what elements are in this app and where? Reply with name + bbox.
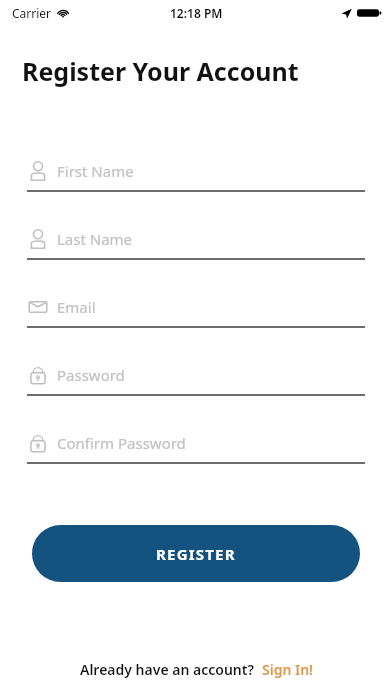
staticText: Carrier bbox=[12, 5, 52, 21]
staticText: Sign In! bbox=[262, 660, 313, 679]
button[interactable]: REGISTER bbox=[32, 525, 360, 582]
staticText: 12:18 PM bbox=[170, 5, 223, 21]
button[interactable]: Confirm Password bbox=[27, 432, 365, 464]
staticText: REGISTER bbox=[156, 544, 236, 564]
button[interactable]: Email bbox=[27, 296, 365, 328]
staticText: Already have an account? bbox=[80, 660, 254, 679]
button[interactable]: Last Name bbox=[27, 228, 365, 260]
staticText: Email bbox=[57, 297, 96, 317]
staticText: Register Your Account bbox=[22, 54, 299, 88]
button[interactable]: Password bbox=[27, 364, 365, 396]
staticText: Confirm Password bbox=[57, 433, 186, 453]
button[interactable]: Sign In! bbox=[262, 660, 313, 679]
button[interactable]: First Name bbox=[27, 160, 365, 192]
staticText: Last Name bbox=[57, 229, 133, 249]
staticText: Password bbox=[57, 365, 125, 385]
staticText: First Name bbox=[57, 161, 134, 181]
